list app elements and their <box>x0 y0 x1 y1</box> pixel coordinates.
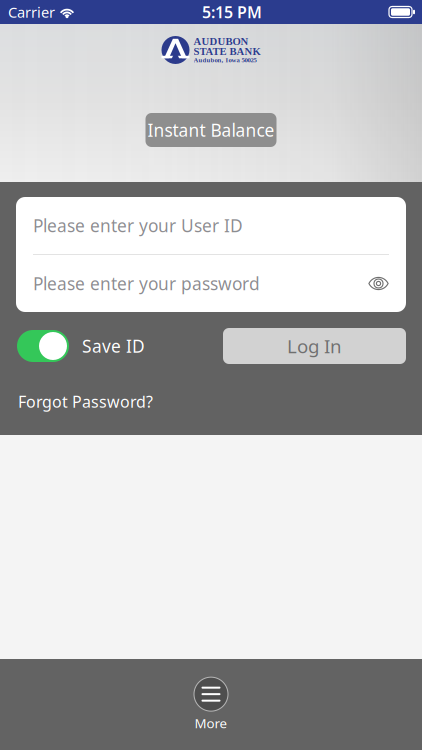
staticText: Save ID <box>82 334 145 357</box>
staticText: Log In <box>287 334 342 358</box>
staticText: More <box>194 714 227 732</box>
staticText: Please enter your User ID <box>33 214 243 237</box>
button[interactable]: Instant Balance <box>145 113 276 147</box>
staticText: Audubon, Iowa 50025 <box>193 56 256 64</box>
staticText: Instant Balance <box>147 118 274 141</box>
staticText: Please enter your password <box>33 272 260 295</box>
button[interactable]: Forgot Password? <box>18 391 153 412</box>
staticText: AUDUBON <box>193 36 248 47</box>
button[interactable]: Save ID <box>17 330 145 362</box>
staticText: Forgot Password? <box>18 391 153 412</box>
staticText: STATE BANK <box>193 46 260 57</box>
staticText: 5:15 PM <box>202 1 262 23</box>
button[interactable]: Log In <box>223 328 406 364</box>
staticText: Carrier <box>8 2 55 22</box>
button[interactable]: More <box>0 659 422 750</box>
button[interactable]: Show password <box>368 276 389 291</box>
